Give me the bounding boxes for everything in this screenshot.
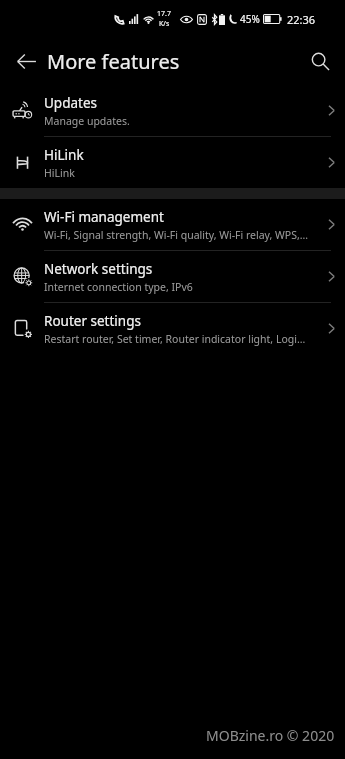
staticText: HiLink — [44, 166, 75, 180]
staticText: Manage updates. — [44, 114, 130, 128]
staticText: 17.7 — [157, 9, 171, 19]
button[interactable]: Updates — [0, 85, 345, 136]
staticText: K/s — [159, 19, 170, 29]
staticText: Router settings — [44, 312, 141, 330]
button[interactable]: HiLink — [0, 137, 345, 188]
staticText: Wi-Fi management — [44, 208, 164, 226]
staticText: HiLink — [44, 146, 84, 164]
button[interactable]: Wi-Fi management — [0, 199, 345, 250]
button[interactable]: Back — [6, 41, 46, 81]
button[interactable]: Network settings — [0, 251, 345, 302]
staticText: MOBzine.ro © 2020 — [206, 726, 335, 745]
staticText: More features — [47, 48, 180, 75]
button[interactable]: Search — [300, 41, 340, 81]
staticText: 22:36 — [287, 12, 316, 27]
staticText: Updates — [44, 94, 98, 112]
staticText: Wi-Fi, Signal strength, Wi-Fi quality, W… — [44, 228, 309, 242]
staticText: 45% — [240, 12, 260, 26]
staticText: Internet connection type, IPv6 — [44, 280, 193, 294]
staticText: Restart router, Set timer, Router indica… — [44, 332, 309, 346]
button[interactable]: Router settings — [0, 303, 345, 354]
staticText: Network settings — [44, 260, 153, 278]
